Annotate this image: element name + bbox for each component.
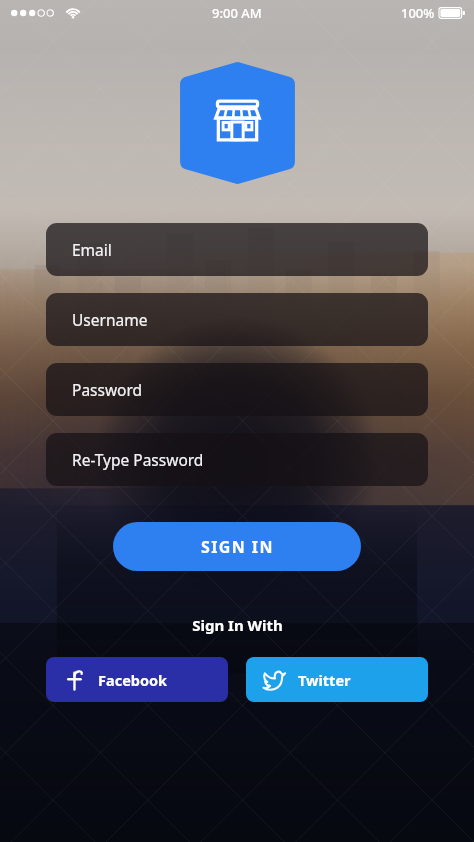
button[interactable]: Password — [46, 363, 428, 416]
staticText: Password — [72, 379, 143, 400]
button[interactable]: Twitter — [246, 657, 428, 702]
button[interactable]: SIGN IN — [113, 522, 361, 571]
staticText: Email — [72, 239, 112, 260]
staticText: Twitter — [298, 670, 351, 690]
button[interactable]: Re-Type Password — [46, 433, 428, 486]
staticText: Sign In With — [192, 615, 283, 635]
staticText: SIGN IN — [201, 536, 274, 558]
button[interactable]: Username — [46, 293, 428, 346]
staticText: Re-Type Password — [72, 449, 204, 470]
button[interactable]: Email — [46, 223, 428, 276]
staticText: Facebook — [98, 670, 168, 690]
staticText: 9:00 AM — [212, 4, 262, 22]
staticText: 100% — [401, 4, 435, 22]
staticText: Username — [72, 309, 148, 330]
other: App logo — [188, 70, 287, 176]
button[interactable]: Facebook — [46, 657, 228, 702]
